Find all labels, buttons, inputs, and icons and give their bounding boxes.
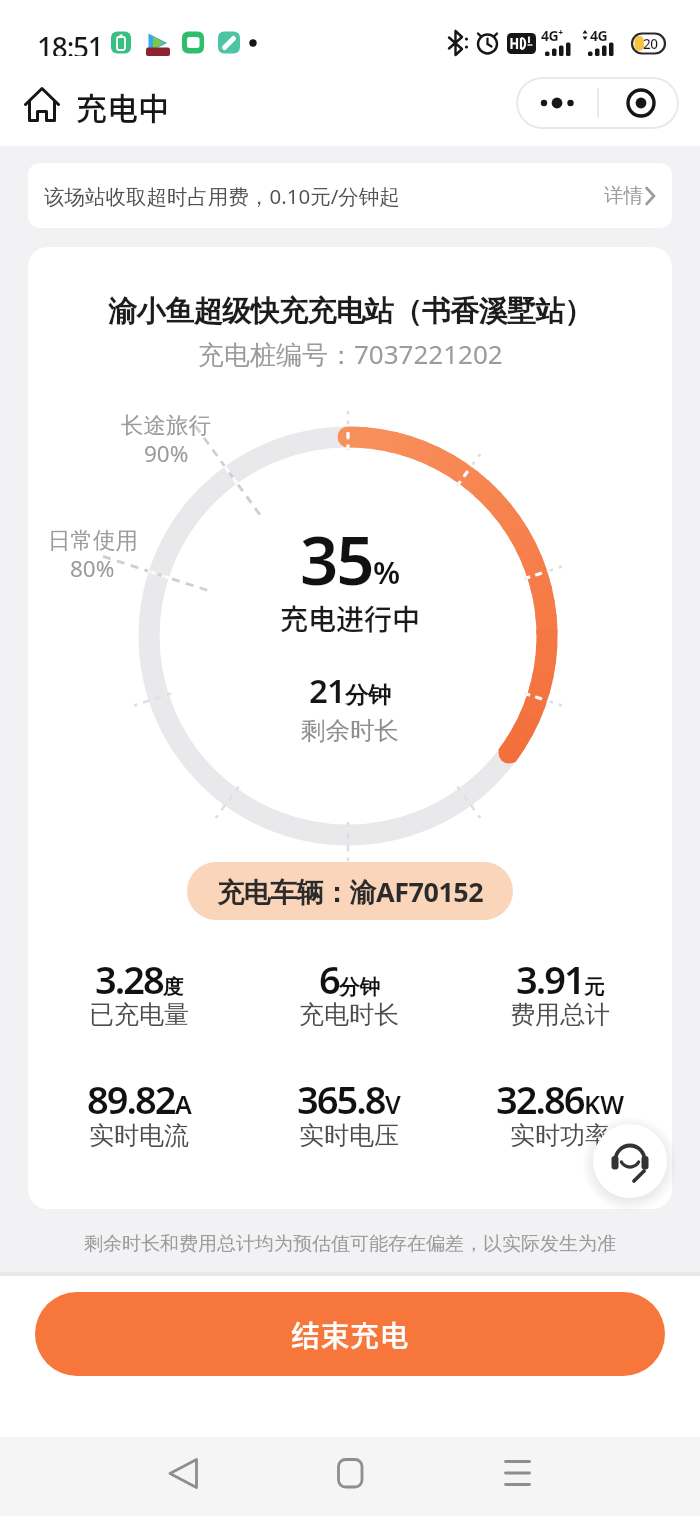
staticText: 详情	[604, 183, 643, 208]
staticText: %	[373, 551, 401, 593]
staticText: 实时电流	[89, 1120, 189, 1151]
button[interactable]	[593, 1124, 667, 1198]
staticText: 89.82	[87, 1073, 175, 1125]
button[interactable]	[158, 1448, 208, 1498]
staticText: 4G⁺	[541, 26, 563, 45]
staticText: 80%	[70, 553, 115, 584]
staticText: V	[385, 1087, 401, 1121]
staticText: 度	[163, 974, 184, 1000]
staticText: 已充电量	[89, 999, 189, 1030]
button[interactable]	[516, 77, 679, 129]
staticText: 该场站收取超时占用费，0.10元/分钟起	[44, 182, 400, 210]
staticText: 18:51	[37, 28, 103, 56]
staticText: 充电桩编号：7037221202	[198, 336, 503, 372]
staticText: 充电进行中	[280, 598, 421, 639]
staticText: 4G	[590, 26, 608, 45]
staticText: 渝小鱼超级快充充电站（书香溪墅站）	[108, 293, 593, 330]
staticText: 费用总计	[510, 999, 610, 1030]
staticText: 分钟	[339, 974, 380, 1000]
button[interactable]	[325, 1448, 375, 1498]
staticText: A	[175, 1087, 192, 1121]
staticText: 分钟	[345, 681, 391, 710]
button[interactable]	[18, 80, 68, 130]
staticText: 90%	[144, 438, 189, 469]
button[interactable]	[492, 1448, 542, 1498]
staticText: 剩余时长	[301, 715, 399, 746]
staticText: 32.86	[496, 1073, 584, 1125]
staticText: 365.8	[297, 1073, 385, 1125]
staticText: KW	[584, 1087, 625, 1121]
staticText: 3.28	[95, 953, 163, 1005]
button[interactable]: 充电车辆：渝AF70152	[187, 862, 513, 920]
staticText: 元	[584, 974, 605, 1000]
staticText: 充电时长	[299, 999, 399, 1030]
staticText: 充电中	[76, 84, 169, 129]
staticText: 21	[309, 668, 345, 713]
staticText: 日常使用	[48, 526, 138, 554]
button[interactable]: 该场站收取超时占用费，0.10元/分钟起	[28, 163, 672, 228]
staticText: 长途旅行	[121, 411, 211, 439]
staticText: 6	[319, 953, 339, 1005]
staticText: 剩余时长和费用总计均为预估值可能存在偏差，以实际发生为准	[84, 1232, 616, 1256]
staticText: 20	[643, 35, 658, 53]
staticText: 实时电压	[299, 1120, 399, 1151]
staticText: 实时功率	[510, 1120, 610, 1151]
staticText: 结束充电	[291, 1313, 410, 1355]
staticText: 充电车辆：渝AF70152	[217, 873, 484, 910]
button[interactable]: 结束充电	[35, 1292, 665, 1376]
staticText: 35	[300, 513, 373, 604]
staticText: 3.91	[516, 953, 584, 1005]
